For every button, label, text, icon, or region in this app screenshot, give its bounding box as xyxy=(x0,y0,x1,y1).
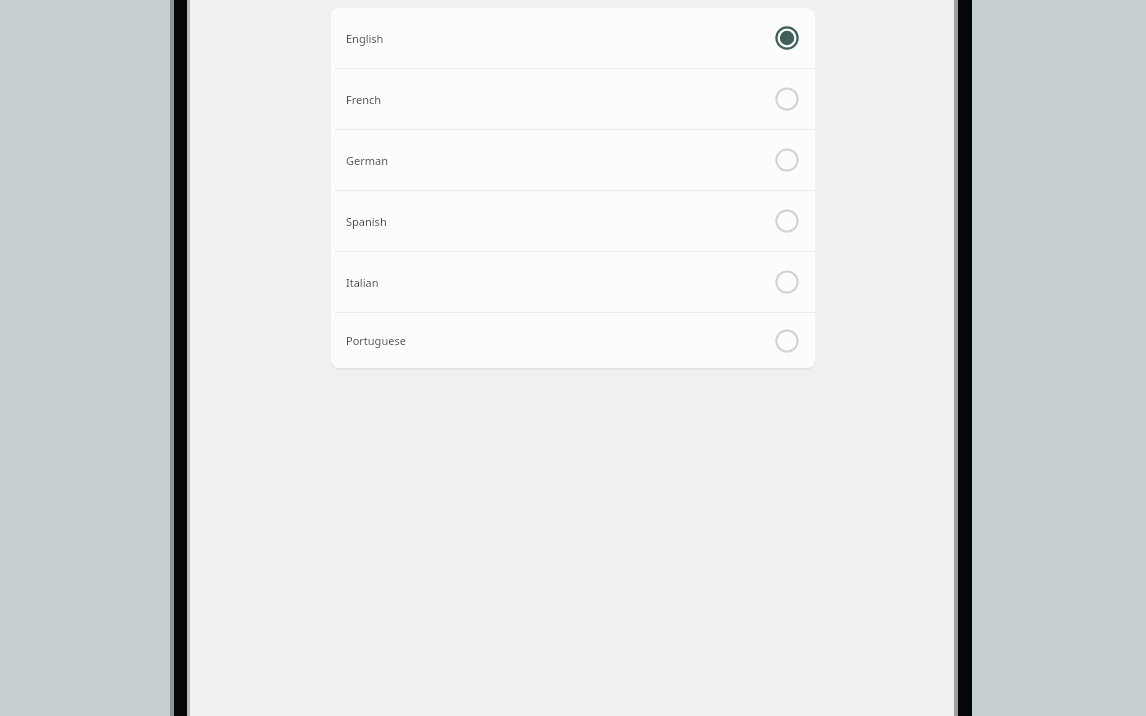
button[interactable]: Select Portuguese xyxy=(774,328,800,354)
button[interactable]: Select German xyxy=(774,147,800,173)
button[interactable]: Select English xyxy=(774,25,800,51)
button[interactable]: French xyxy=(331,69,815,129)
staticText: German xyxy=(346,153,774,168)
button[interactable]: Select French xyxy=(774,86,800,112)
button[interactable]: German xyxy=(331,130,815,190)
staticText: Spanish xyxy=(346,214,774,229)
staticText: English xyxy=(346,31,774,46)
button[interactable]: English xyxy=(331,8,815,68)
staticText: Portuguese xyxy=(346,333,774,348)
button[interactable]: Spanish xyxy=(331,191,815,251)
staticText: Italian xyxy=(346,275,774,290)
button[interactable]: Italian xyxy=(331,252,815,312)
button[interactable]: Select Italian xyxy=(774,269,800,295)
staticText: French xyxy=(346,92,774,107)
button[interactable]: Portuguese xyxy=(331,313,815,368)
button[interactable]: Select Spanish xyxy=(774,208,800,234)
